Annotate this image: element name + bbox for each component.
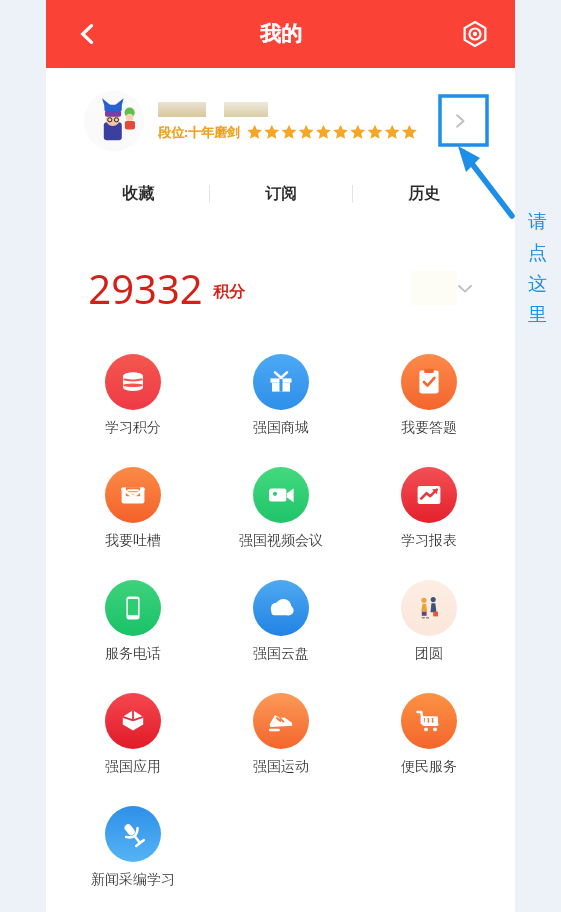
button[interactable]: 便民服务 (355, 687, 503, 782)
button[interactable]: 强国云盘 (207, 574, 355, 669)
staticText: 里 (528, 303, 547, 327)
staticText: 29332 (88, 261, 203, 315)
staticText: 学习报表 (401, 532, 457, 550)
staticText: 学习积分 (105, 419, 161, 437)
staticText: 历史 (408, 184, 440, 204)
button[interactable]: Back (66, 12, 110, 56)
button[interactable]: 收藏 (66, 170, 209, 218)
staticText: 强国视频会议 (239, 532, 323, 550)
button[interactable]: 我要吐槽 (58, 461, 207, 556)
staticText: 收藏 (122, 184, 154, 204)
staticText: 这 (528, 272, 547, 296)
button[interactable]: 历史 (353, 170, 495, 218)
button[interactable]: 强国视频会议 (207, 461, 355, 556)
button[interactable]: 强国商城 (207, 348, 355, 443)
button[interactable]: 新闻采编学习 (58, 800, 207, 895)
staticText: 请 (528, 210, 547, 234)
button[interactable]: 我要答题 (355, 348, 503, 443)
button[interactable]: 强国应用 (58, 687, 207, 782)
staticText: 订阅 (265, 184, 297, 204)
staticText: 我要答题 (401, 419, 457, 437)
staticText: 积分 (213, 282, 245, 302)
staticText: 团圆 (415, 645, 443, 663)
button[interactable]: 团圆 (355, 574, 503, 669)
staticText: 强国应用 (105, 758, 161, 776)
button[interactable]: 学习报表 (355, 461, 503, 556)
button[interactable]: 29332 (66, 250, 495, 326)
staticText: 段位:十年磨剑 (158, 123, 240, 141)
staticText: 便民服务 (401, 758, 457, 776)
staticText: 点 (528, 241, 547, 265)
staticText: 强国云盘 (253, 645, 309, 663)
button[interactable]: Settings (453, 12, 497, 56)
button[interactable]: 段位:十年磨剑 (66, 72, 495, 170)
staticText: 强国商城 (253, 419, 309, 437)
staticText: 我要吐槽 (105, 532, 161, 550)
button[interactable]: 强国运动 (207, 687, 355, 782)
button[interactable]: 订阅 (210, 170, 352, 218)
button[interactable]: 服务电话 (58, 574, 207, 669)
staticText: 强国运动 (253, 758, 309, 776)
button[interactable]: More (439, 99, 481, 143)
staticText: 我的 (260, 21, 302, 47)
staticText: 新闻采编学习 (91, 871, 175, 889)
button[interactable]: 学习积分 (58, 348, 207, 443)
staticText: 服务电话 (105, 645, 161, 663)
